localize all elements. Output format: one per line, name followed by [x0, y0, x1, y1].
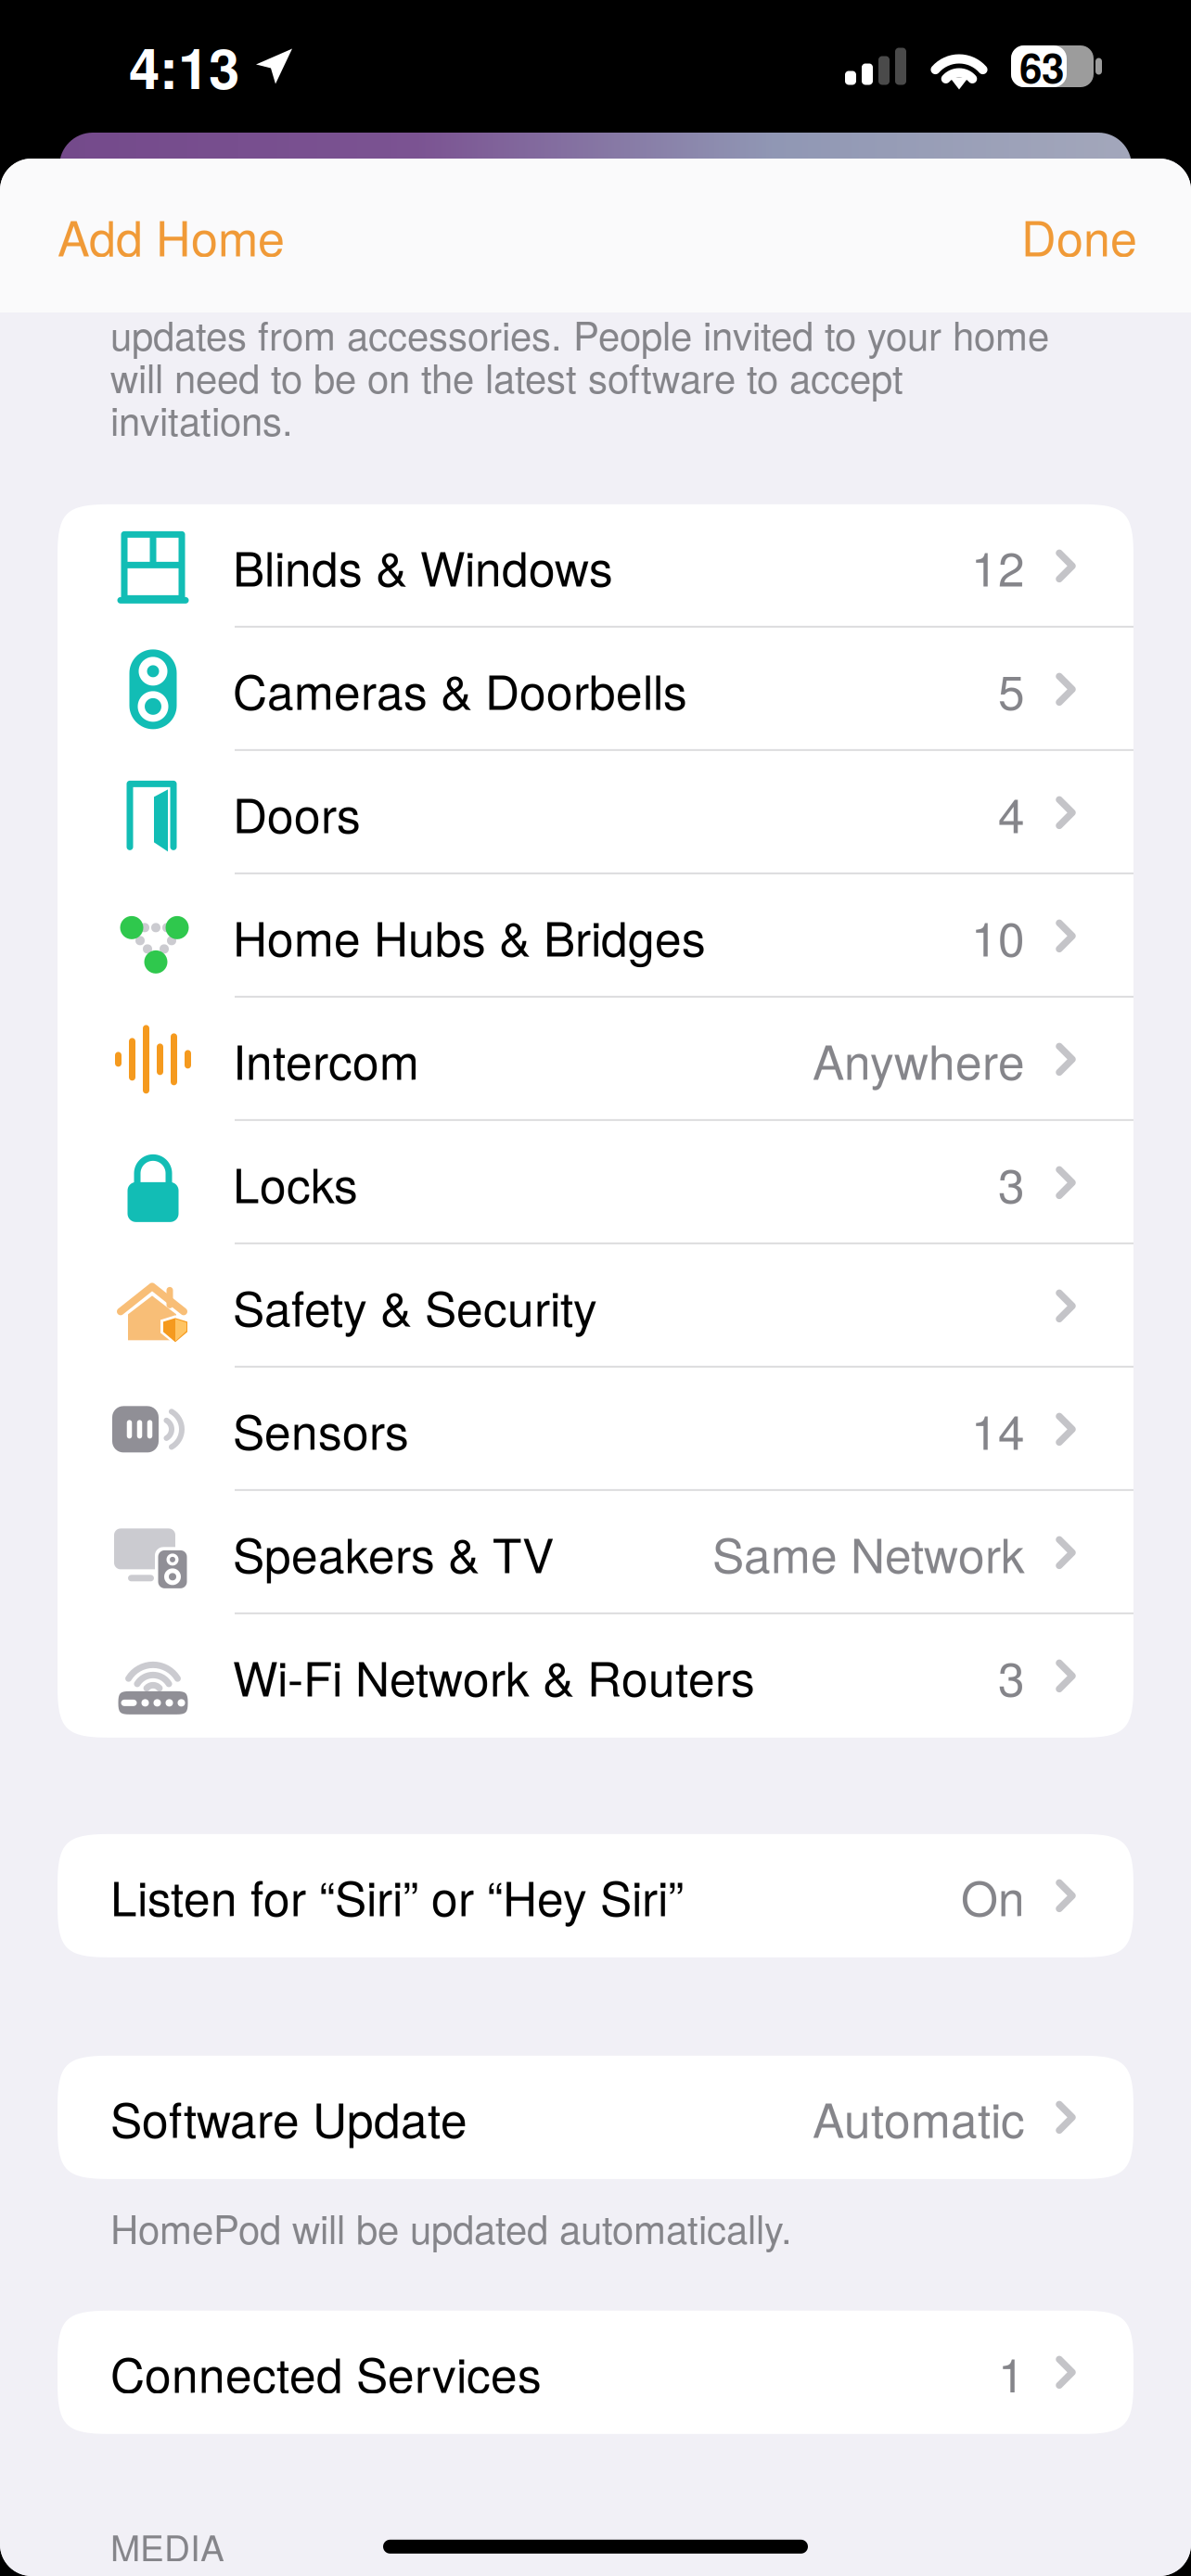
button[interactable]: Intercom [58, 998, 1133, 1121]
staticText: 4:13 [129, 26, 239, 106]
staticText: MEDIA [110, 2520, 224, 2572]
button[interactable]: Home Hubs & Bridges [58, 874, 1133, 998]
staticText: Same Network [712, 1519, 1025, 1587]
staticText: Add Home [58, 201, 285, 270]
button[interactable]: Blinds & Windows [58, 504, 1133, 628]
staticText: 3 [998, 1642, 1025, 1710]
staticText: Automatic [813, 2083, 1025, 2151]
staticText: Safety & Security [233, 1272, 597, 1340]
button[interactable]: Connected Services [58, 2311, 1133, 2434]
staticText: On [961, 1862, 1025, 1930]
staticText: Doors [233, 779, 361, 847]
staticText: Blinds & Windows [233, 532, 613, 600]
button[interactable]: Sensors [58, 1368, 1133, 1491]
staticText: 1 [998, 2338, 1025, 2406]
staticText: Wi-Fi Network & Routers [233, 1642, 755, 1710]
staticText: 63 [1019, 37, 1064, 96]
button[interactable]: Speakers & TV [58, 1491, 1133, 1614]
staticText: Done [1021, 201, 1137, 270]
staticText: HomePod will be updated automatically. [110, 2199, 792, 2255]
button[interactable]: Add Home [58, 201, 285, 270]
staticText: Speakers & TV [233, 1519, 554, 1587]
staticText: 4 [998, 779, 1025, 847]
staticText: Listen for “Siri” or “Hey Siri” [110, 1862, 684, 1930]
staticText: Locks [233, 1149, 358, 1217]
staticText: 5 [998, 655, 1025, 723]
staticText: invitations. [110, 391, 293, 447]
staticText: Intercom [233, 1025, 419, 1093]
button[interactable]: Doors [58, 751, 1133, 874]
staticText: Connected Services [110, 2338, 542, 2406]
button[interactable]: Locks [58, 1121, 1133, 1244]
staticText: updates from accessories. People invited… [110, 306, 1049, 362]
staticText: Anywhere [813, 1025, 1025, 1093]
button[interactable]: Listen for “Siri” or “Hey Siri” [58, 1834, 1133, 1957]
staticText: will need to be on the latest software t… [110, 349, 903, 404]
staticText: 14 [971, 1395, 1025, 1463]
button[interactable]: Wi-Fi Network & Routers [58, 1614, 1133, 1738]
staticText: 10 [971, 902, 1025, 970]
staticText: 12 [971, 532, 1025, 600]
button[interactable]: Safety & Security [58, 1244, 1133, 1368]
button[interactable]: Software Update [58, 2056, 1133, 2179]
button[interactable]: Done [1021, 201, 1137, 270]
staticText: Software Update [110, 2083, 467, 2151]
staticText: Sensors [233, 1395, 409, 1463]
staticText: Home Hubs & Bridges [233, 902, 706, 970]
staticText: Cameras & Doorbells [233, 655, 687, 723]
staticText: 3 [998, 1149, 1025, 1217]
button[interactable]: Cameras & Doorbells [58, 628, 1133, 751]
